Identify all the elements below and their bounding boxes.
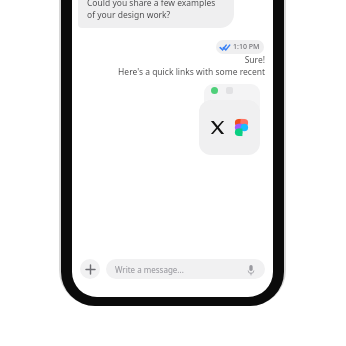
staticText: Here's a quick links with some recent — [118, 66, 265, 78]
staticText: Could you share a few examples of your d… — [87, 0, 225, 21]
button[interactable]: Sure! — [72, 54, 265, 78]
button[interactable]: Voice message — [246, 263, 256, 276]
button[interactable]: Write a message... — [106, 259, 265, 279]
staticText: 1:10 PM — [233, 42, 260, 52]
button[interactable]: Shared links: X and Figma — [199, 100, 260, 155]
button[interactable]: Add attachment — [80, 259, 100, 279]
button[interactable]: 1:10 PM — [216, 40, 264, 54]
staticText: Sure! — [244, 54, 265, 66]
staticText: Write a message... — [115, 264, 184, 275]
button[interactable]: Hope you're doing great. — [78, 0, 234, 28]
